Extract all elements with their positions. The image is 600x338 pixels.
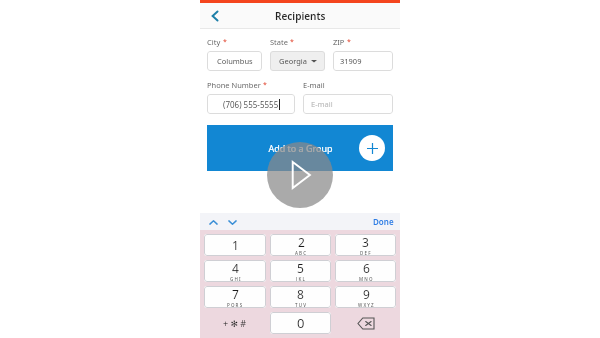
button[interactable]: 6 [335, 260, 396, 282]
button[interactable]: Add [359, 135, 385, 161]
staticText: E-mail [311, 99, 333, 109]
staticText: Georgia [279, 56, 308, 66]
staticText: City [207, 37, 221, 47]
staticText: 1 [232, 237, 239, 253]
staticText: 31909 [340, 56, 362, 66]
button[interactable]: Backspace [335, 312, 396, 334]
button[interactable]: 5 [270, 260, 331, 282]
staticText: Add to a Group [268, 142, 333, 154]
staticText: * [290, 37, 294, 47]
button[interactable]: Play [267, 142, 333, 208]
button[interactable]: 2 [270, 234, 331, 256]
button[interactable]: Georgia [270, 51, 325, 71]
button[interactable]: 3 [335, 234, 396, 256]
staticText: State [270, 37, 288, 47]
button[interactable]: 31909 [333, 51, 393, 71]
button[interactable]: 9 [335, 286, 396, 308]
button[interactable]: Next field [225, 215, 239, 229]
staticText: (706) 555-5555 [223, 99, 279, 110]
button[interactable]: 8 [270, 286, 331, 308]
staticText: G H I [230, 276, 241, 282]
staticText: 6 [363, 260, 370, 276]
staticText: Phone Number [207, 80, 261, 90]
button[interactable]: Add to a Group [207, 125, 393, 171]
staticText: 9 [363, 286, 370, 302]
button[interactable]: (706) 555-5555 [207, 94, 295, 114]
button[interactable]: Columbus [207, 51, 262, 71]
staticText: + ✻ # [223, 317, 247, 329]
button[interactable]: 4 [204, 260, 266, 282]
staticText: 4 [232, 260, 239, 276]
staticText: ZIP [333, 37, 345, 47]
staticText: 0 [297, 314, 305, 332]
staticText: A B C [295, 250, 307, 256]
button[interactable]: Back [204, 5, 226, 27]
staticText: T U V [295, 302, 306, 308]
staticText: J K L [296, 276, 305, 282]
staticText: 3 [362, 234, 369, 250]
button[interactable]: 0 [270, 312, 331, 334]
staticText: P Q R S [227, 302, 243, 308]
staticText: 2 [298, 234, 305, 250]
staticText: 8 [297, 286, 304, 302]
staticText: 7 [232, 286, 239, 302]
staticText: E-mail [303, 80, 325, 90]
button[interactable]: E-mail [303, 94, 393, 114]
staticText: W X Y Z [358, 302, 374, 308]
staticText: * [263, 80, 267, 90]
staticText: M N O [359, 276, 373, 282]
staticText: Recipients [275, 9, 326, 23]
button[interactable]: Previous field [206, 215, 220, 229]
staticText: 5 [297, 260, 304, 276]
staticText: Done [373, 216, 394, 227]
staticText: * [223, 37, 227, 47]
button[interactable]: Done [373, 216, 394, 227]
button[interactable]: 7 [204, 286, 266, 308]
button[interactable]: 1 [204, 234, 266, 256]
staticText: D E F [360, 250, 371, 256]
staticText: Columbus [217, 56, 253, 66]
button[interactable]: + ✻ # [204, 312, 266, 334]
staticText: * [347, 37, 351, 47]
